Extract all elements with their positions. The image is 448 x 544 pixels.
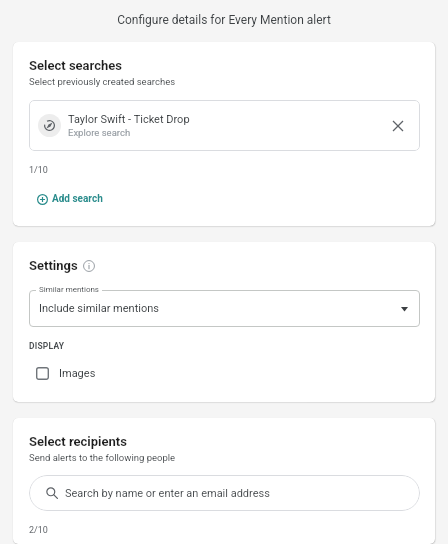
staticText: Search by name or enter an email address	[65, 487, 270, 500]
staticText: 1/10	[29, 165, 48, 176]
staticText: Settings	[29, 258, 78, 273]
button[interactable]	[29, 290, 420, 327]
button[interactable]: Taylor Swift - Ticket Drop	[29, 100, 420, 151]
staticText: DISPLAY	[29, 341, 65, 351]
staticText: Select recipients	[29, 434, 127, 449]
staticText: Taylor Swift - Ticket Drop	[68, 113, 190, 126]
button[interactable]: Remove search	[386, 114, 410, 138]
staticText: Add search	[52, 193, 103, 205]
staticText: Images	[59, 367, 96, 380]
staticText: Configure details for Every Mention aler…	[117, 13, 331, 27]
staticText: Select searches	[29, 58, 122, 73]
staticText: 2/10	[29, 525, 48, 536]
staticText: Similar mentions	[39, 285, 99, 294]
button[interactable]: Images	[29, 366, 96, 381]
other: Info	[83, 260, 95, 272]
staticText: Select previously created searches	[29, 76, 176, 87]
staticText: Include similar mentions	[39, 302, 159, 315]
button[interactable]: Add search	[29, 192, 103, 206]
staticText: Send alerts to the following people	[29, 452, 176, 463]
button[interactable]: Search by name or enter an email address	[29, 475, 420, 511]
staticText: Explore search	[68, 127, 131, 138]
